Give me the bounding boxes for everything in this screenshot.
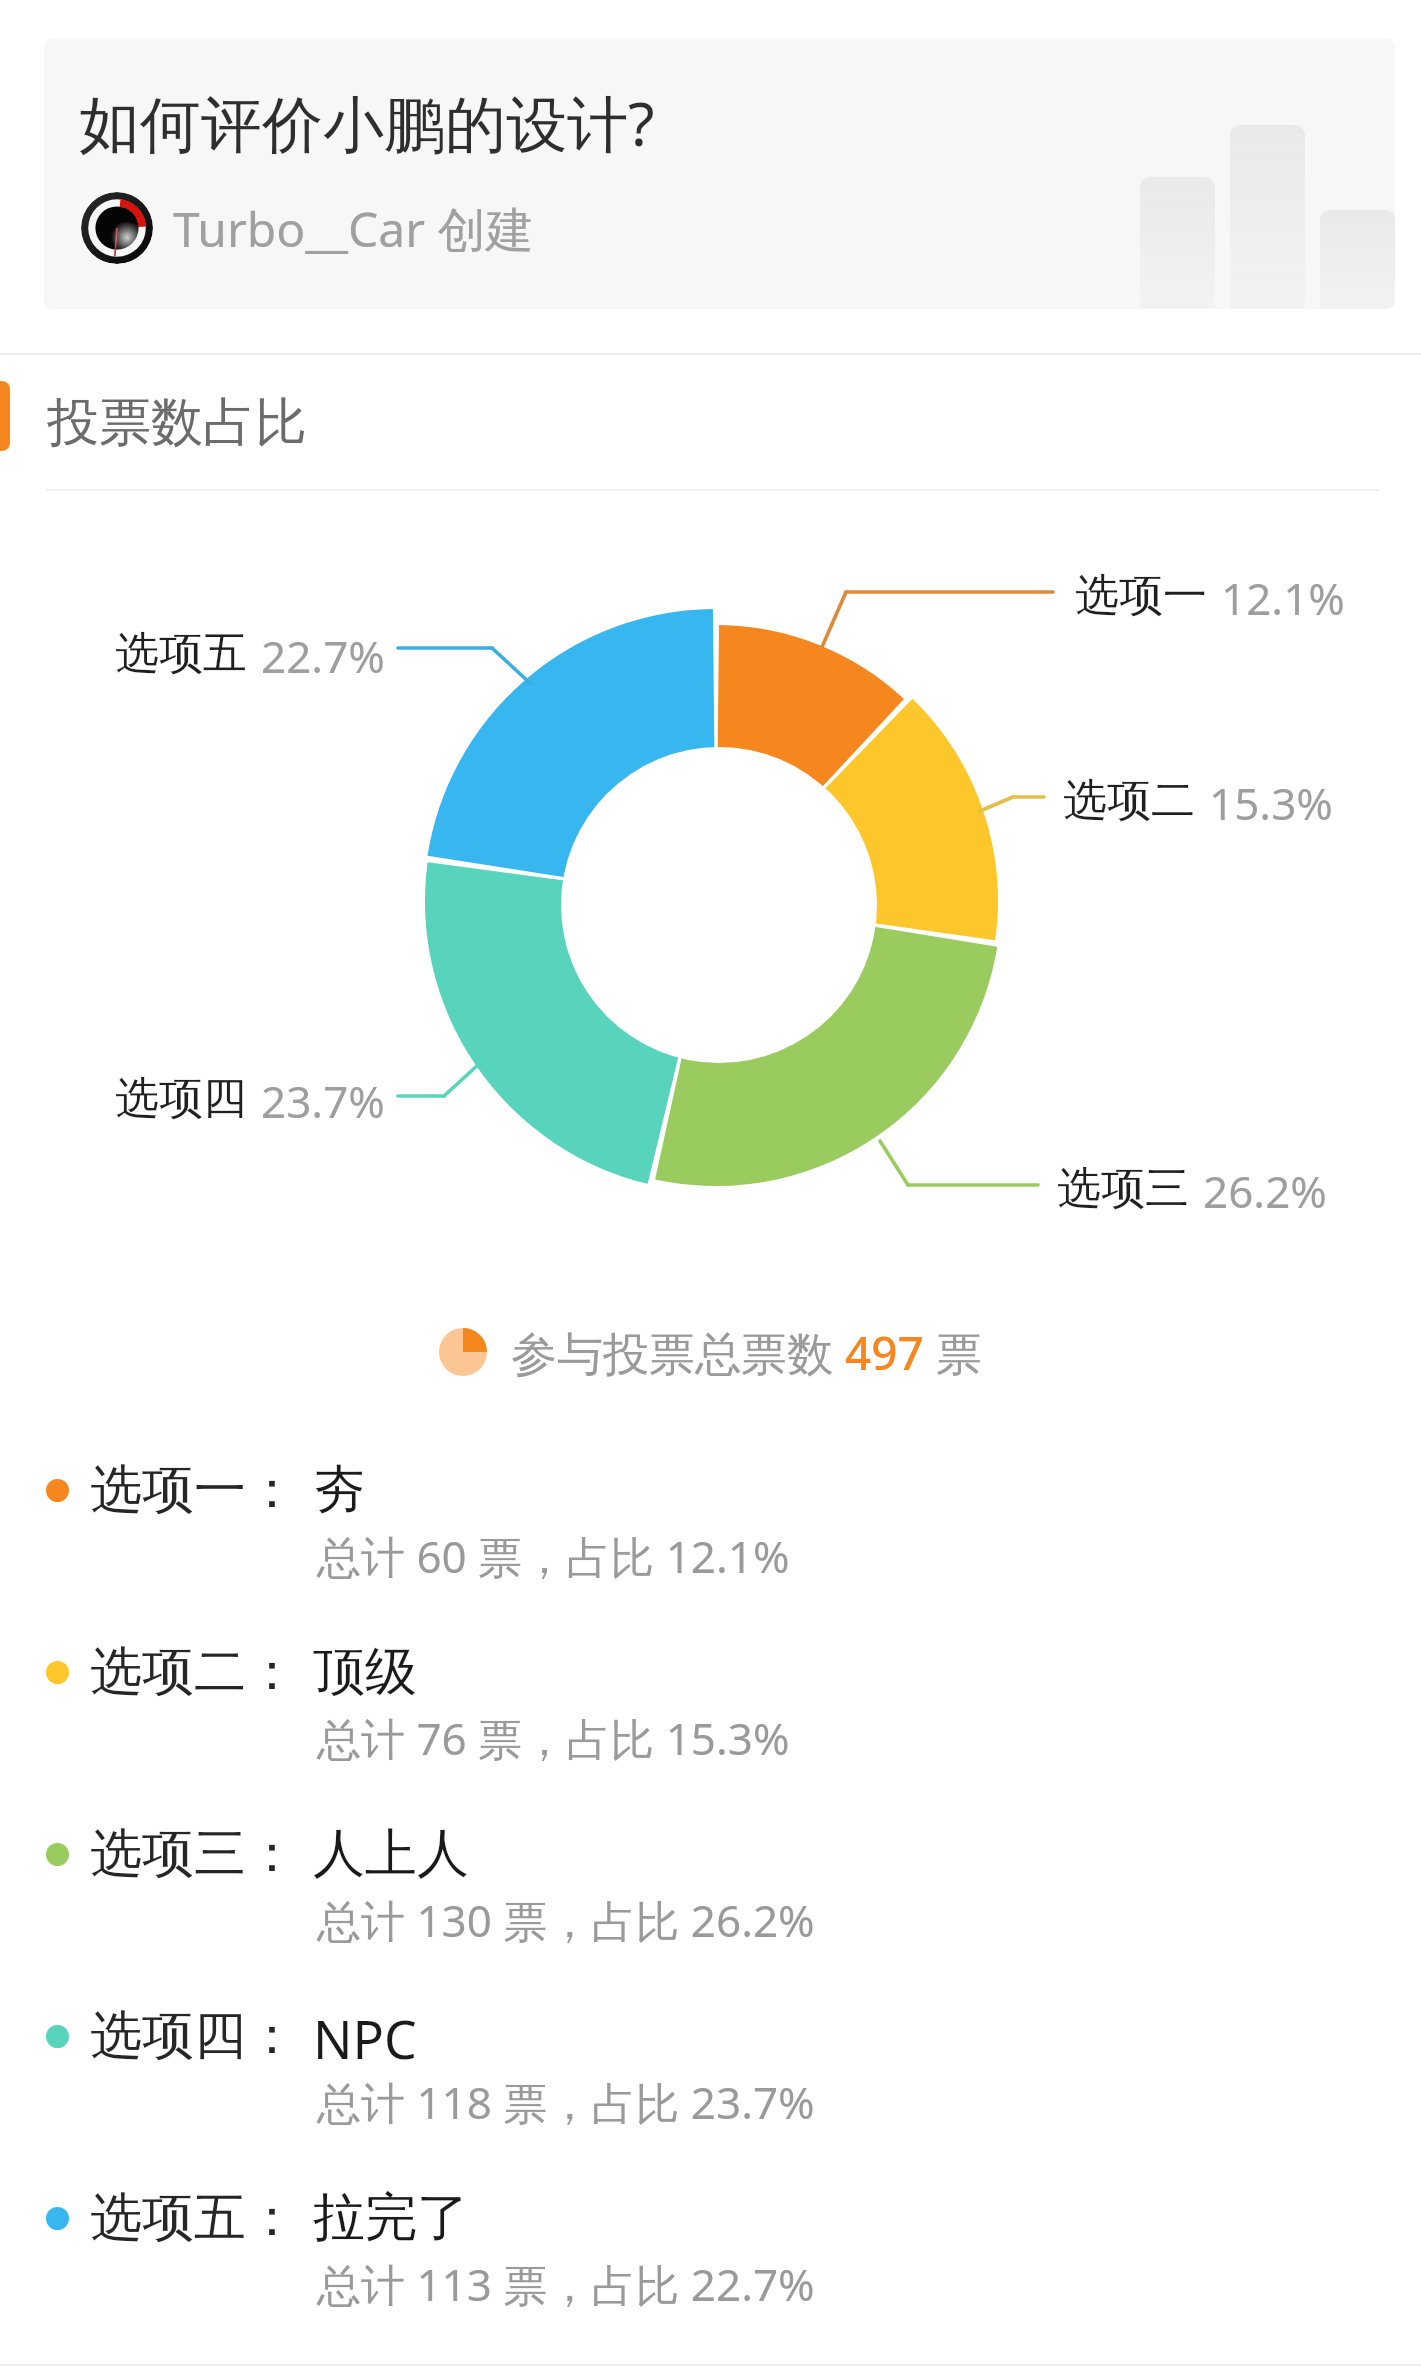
- staticText: 选项四：: [90, 2003, 298, 2069]
- staticText: 选项五：: [90, 2185, 298, 2251]
- staticText: 选项一: [1075, 568, 1207, 623]
- staticText: Turbo__Car 创建: [173, 196, 534, 262]
- button[interactable]: Turbo__Car avatar: [81, 192, 153, 264]
- other: Poll statistics: [439, 1328, 487, 1376]
- staticText: 23.7%: [261, 1071, 385, 1131]
- staticText: 总计 60 票，占比 12.1%: [317, 1526, 790, 1586]
- staticText: 选项三: [1057, 1161, 1189, 1216]
- staticText: 选项二：: [90, 1639, 298, 1705]
- staticText: 总计 113 票，占比 22.7%: [317, 2254, 815, 2314]
- staticText: 选项三：: [90, 1821, 298, 1887]
- staticText: 总计 118 票，占比 23.7%: [317, 2072, 815, 2132]
- staticText: 拉完了: [313, 2185, 469, 2251]
- staticText: 总计 130 票，占比 26.2%: [317, 1890, 815, 1950]
- button[interactable]: 选项三：: [0, 1821, 1421, 2001]
- staticText: 票: [924, 1321, 982, 1384]
- staticText: 人上人: [313, 1821, 469, 1887]
- button[interactable]: 选项一：: [0, 1457, 1421, 1637]
- staticText: 顶级: [313, 1639, 417, 1705]
- staticText: 22.7%: [261, 626, 385, 686]
- staticText: 26.2%: [1203, 1161, 1327, 1221]
- staticText: 如何评价小鹏的设计?: [79, 81, 655, 164]
- staticText: 参与投票总票数: [511, 1321, 845, 1384]
- staticText: 总计 76 票，占比 15.3%: [317, 1708, 790, 1768]
- button[interactable]: 选项四：: [0, 2003, 1421, 2183]
- button[interactable]: 选项二：: [0, 1639, 1421, 1819]
- button[interactable]: 选项五：: [0, 2185, 1421, 2365]
- staticText: 选项五: [115, 626, 247, 681]
- staticText: 选项四: [115, 1071, 247, 1126]
- staticText: 投票数占比: [47, 390, 307, 456]
- staticText: 选项二: [1063, 773, 1195, 828]
- staticText: NPC: [313, 2003, 417, 2074]
- staticText: 12.1%: [1221, 568, 1345, 628]
- staticText: 选项一：: [90, 1457, 298, 1523]
- staticText: 15.3%: [1209, 773, 1333, 833]
- button[interactable]: Poll statistics: [0, 1312, 1421, 1392]
- staticText: 497: [845, 1321, 924, 1384]
- staticText: 夯: [313, 1457, 365, 1523]
- button[interactable]: 如何评价小鹏的设计?: [44, 39, 1395, 309]
